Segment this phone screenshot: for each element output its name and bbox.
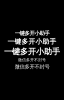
staticText: 微信多开不封号	[14, 63, 49, 70]
staticText: 一键多开小助手	[7, 37, 56, 46]
staticText: 一键多开小助手	[14, 30, 49, 37]
staticText: 微信多开不封号	[18, 58, 46, 62]
staticText: 一键多开小助手	[4, 47, 60, 56]
